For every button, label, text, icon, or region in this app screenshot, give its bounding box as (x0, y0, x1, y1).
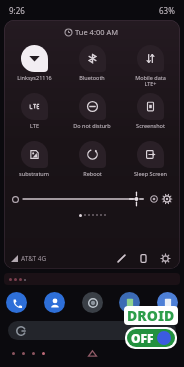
staticText: LTE (30, 122, 39, 129)
staticText: AT&T 4G (21, 254, 47, 263)
button[interactable]: Screenshot (122, 90, 178, 138)
staticText: Do not disturb (73, 122, 111, 129)
button[interactable]: Auto brightness (150, 195, 158, 203)
button[interactable]: Edit tiles (113, 250, 129, 266)
button[interactable]: App (44, 292, 65, 313)
staticText: substratum (19, 170, 49, 177)
button[interactable]: Sleep Screen (122, 138, 178, 186)
button[interactable]: Mobile data LTE+ (122, 42, 178, 90)
staticText: Bluetooth (79, 74, 105, 81)
staticText: Tue 4:00 AM (75, 27, 119, 37)
staticText: 9:26 (9, 5, 25, 16)
button[interactable]: Brightness settings (162, 194, 172, 204)
button[interactable]: Power menu (135, 250, 151, 266)
staticText: Screenshot (136, 122, 165, 129)
button[interactable]: Linksys21116 (6, 42, 62, 90)
button[interactable]: Google search (8, 321, 176, 340)
button[interactable]: LTE (6, 90, 62, 138)
button[interactable]: App (157, 292, 178, 313)
button[interactable]: App (119, 292, 140, 313)
button[interactable]: Brightness (23, 190, 145, 208)
button[interactable]: substratum (6, 138, 62, 186)
staticText: 63% (159, 5, 175, 16)
staticText: Mobile data LTE+ (135, 74, 166, 88)
button[interactable]: Settings (157, 250, 173, 266)
button[interactable]: App (82, 292, 103, 313)
staticText: DROID (127, 306, 175, 325)
button[interactable]: Bluetooth (64, 42, 120, 90)
button[interactable]: App (6, 292, 27, 313)
staticText: OFF (131, 330, 154, 346)
staticText: Sleep Screen (134, 170, 167, 177)
button[interactable]: Do not disturb (64, 90, 120, 138)
button[interactable]: Reboot (64, 138, 120, 186)
staticText: Linksys21116 (17, 74, 52, 81)
staticText: Reboot (83, 170, 102, 177)
